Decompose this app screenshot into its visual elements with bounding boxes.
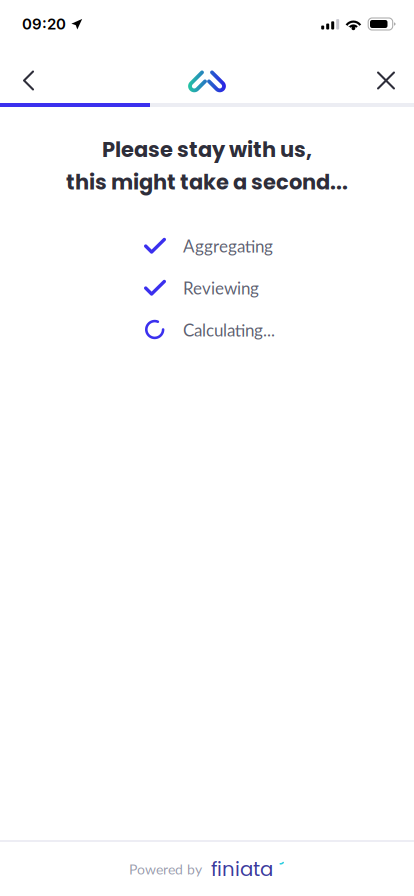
staticText: this might take a second... [66,167,348,197]
staticText: finiata [211,855,273,883]
button[interactable]: Close [358,53,414,108]
staticText: Reviewing [183,278,259,298]
staticText: Aggregating [183,236,273,256]
staticText: Powered by [129,861,202,877]
staticText: Please stay with us, [102,135,312,164]
staticText: Calculating... [183,320,275,340]
button[interactable]: Back [0,53,57,108]
staticText: 09:20 [22,15,66,33]
